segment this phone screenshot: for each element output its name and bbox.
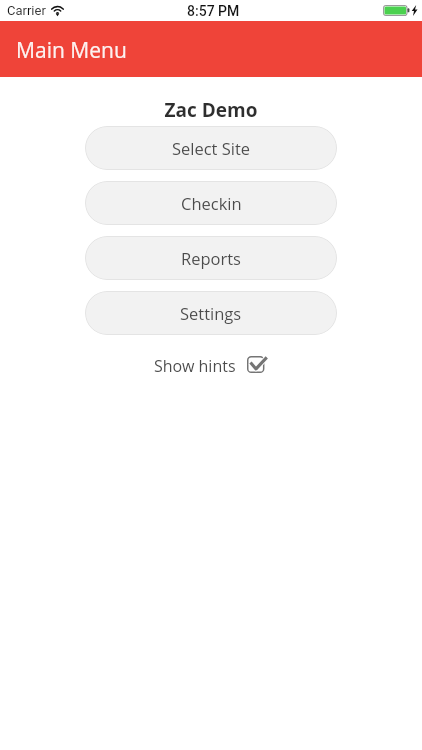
staticText: Main Menu (16, 36, 127, 65)
other: Show hints checked (247, 354, 269, 376)
staticText: Zac Demo (0, 97, 422, 123)
staticText: Reports (181, 247, 241, 269)
button[interactable]: Reports (85, 236, 337, 280)
staticText: Select Site (172, 137, 251, 159)
button[interactable]: Settings (85, 291, 337, 335)
button[interactable]: Select Site (85, 126, 337, 170)
staticText: 8:57 PM (187, 3, 240, 19)
button[interactable]: Show hints (154, 353, 269, 377)
staticText: Settings (180, 302, 242, 324)
button[interactable]: Checkin (85, 181, 337, 225)
staticText: Carrier (7, 3, 46, 18)
staticText: Show hints (154, 355, 236, 377)
staticText: Checkin (181, 192, 242, 214)
